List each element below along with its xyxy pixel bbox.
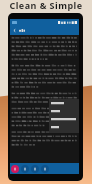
button[interactable] — [49, 123, 79, 131]
button[interactable]: Search — [21, 165, 29, 173]
button[interactable] — [49, 115, 79, 123]
staticText: Clean & Simple — [0, 0, 92, 11]
button[interactable]: Bookmarks — [31, 165, 39, 173]
button[interactable] — [49, 107, 79, 115]
button[interactable] — [49, 99, 79, 107]
button[interactable]: Add — [11, 165, 19, 173]
button[interactable]: Settings — [41, 165, 49, 173]
button[interactable]: Back — [11, 27, 17, 33]
